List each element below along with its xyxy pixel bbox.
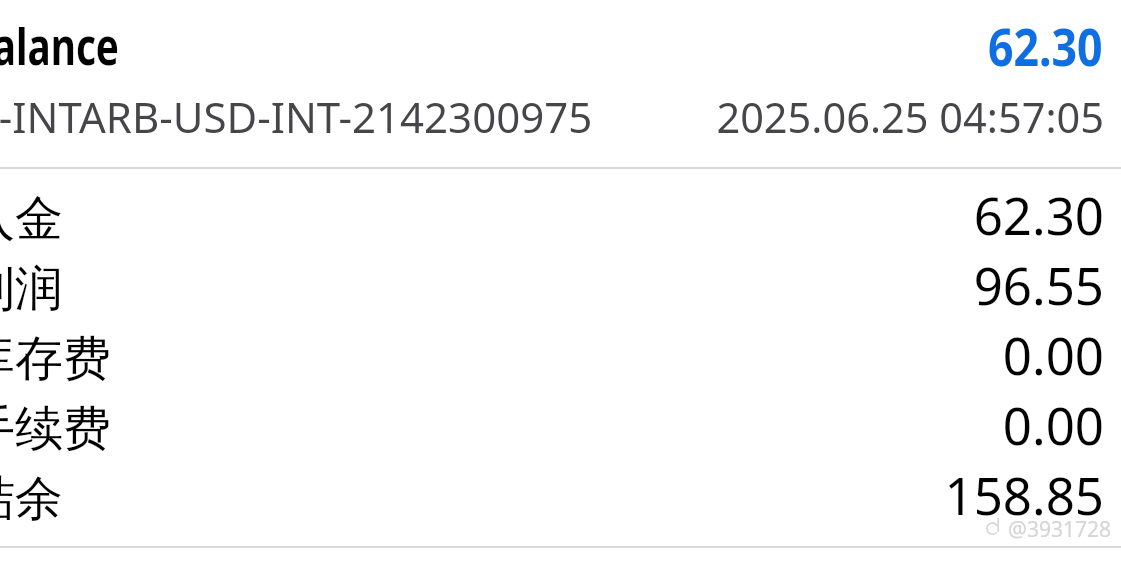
staticText: A-INTARB-USD-INT-2142300975 [0, 88, 593, 145]
staticText: 结余 [0, 469, 63, 529]
button[interactable]: 手续费 [0, 391, 1121, 461]
button[interactable]: 库存费 [0, 321, 1121, 391]
staticText: 库存费 [0, 329, 111, 389]
staticText: 0.00 [621, 320, 1104, 389]
other: Watermark logo [986, 517, 1004, 536]
button[interactable]: Balance [0, 0, 1121, 167]
staticText: 2025.06.25 04:57:05 [621, 89, 1104, 146]
button[interactable]: 结余 [0, 461, 1121, 531]
staticText: 96.55 [621, 250, 1104, 319]
staticText: 利润 [0, 259, 63, 319]
staticText: 0.00 [621, 390, 1104, 459]
staticText: 62.30 [621, 180, 1104, 249]
staticText: 158.85 [621, 460, 1104, 529]
staticText: 手续费 [0, 399, 111, 459]
staticText: Balance [0, 12, 120, 80]
staticText: 入金 [0, 189, 63, 249]
button[interactable]: 入金 [0, 181, 1121, 251]
staticText: 62.30 [988, 10, 1103, 81]
staticText: @3931728 [700, 515, 1111, 544]
button[interactable]: 利润 [0, 251, 1121, 321]
